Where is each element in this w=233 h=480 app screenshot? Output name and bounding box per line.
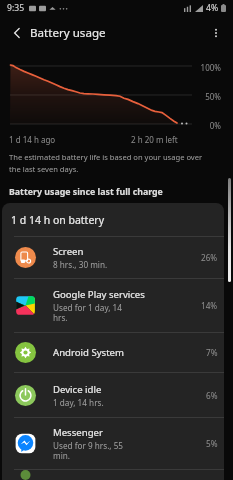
- staticText: Google Play services: [53, 288, 145, 301]
- staticText: 4%: [206, 2, 219, 14]
- button[interactable]: Google Play services: [2, 279, 224, 332]
- staticText: 5%: [206, 438, 218, 449]
- staticText: Battery usage since last full charge: [9, 186, 163, 198]
- button[interactable]: Android System: [2, 333, 224, 372]
- staticText: 2 h 20 m left: [131, 134, 178, 145]
- staticText: Screen: [53, 245, 84, 258]
- staticText: 1 d 14 h on battery: [11, 213, 104, 227]
- button[interactable]: Screen: [2, 237, 224, 278]
- staticText: 1 d 14 h ago: [9, 134, 56, 145]
- staticText: 6%: [206, 390, 218, 401]
- staticText: 0%: [181, 120, 221, 131]
- button[interactable]: [2, 470, 224, 480]
- staticText: 1 day, 14 hrs.: [53, 397, 104, 408]
- staticText: The estimated battery life is based on y…: [9, 152, 215, 174]
- staticText: Device idle: [53, 383, 102, 396]
- staticText: 50%: [181, 91, 221, 102]
- staticText: Used for 1 day, 14 hrs.: [53, 302, 122, 324]
- button[interactable]: Back: [0, 16, 34, 50]
- staticText: 26%: [201, 252, 218, 263]
- staticText: 100%: [181, 62, 221, 73]
- button[interactable]: More options: [199, 16, 233, 50]
- staticText: Battery usage: [30, 25, 106, 41]
- staticText: 9:35: [7, 2, 25, 14]
- button[interactable]: Messenger: [2, 418, 224, 469]
- staticText: Used for 9 hrs., 55 min.: [53, 440, 124, 462]
- button[interactable]: Device idle: [2, 373, 224, 417]
- staticText: 14%: [201, 300, 218, 311]
- staticText: 8 hrs., 30 min.: [53, 259, 108, 270]
- staticText: Android System: [53, 346, 125, 359]
- staticText: Messenger: [53, 426, 103, 439]
- staticText: 7%: [206, 347, 218, 358]
